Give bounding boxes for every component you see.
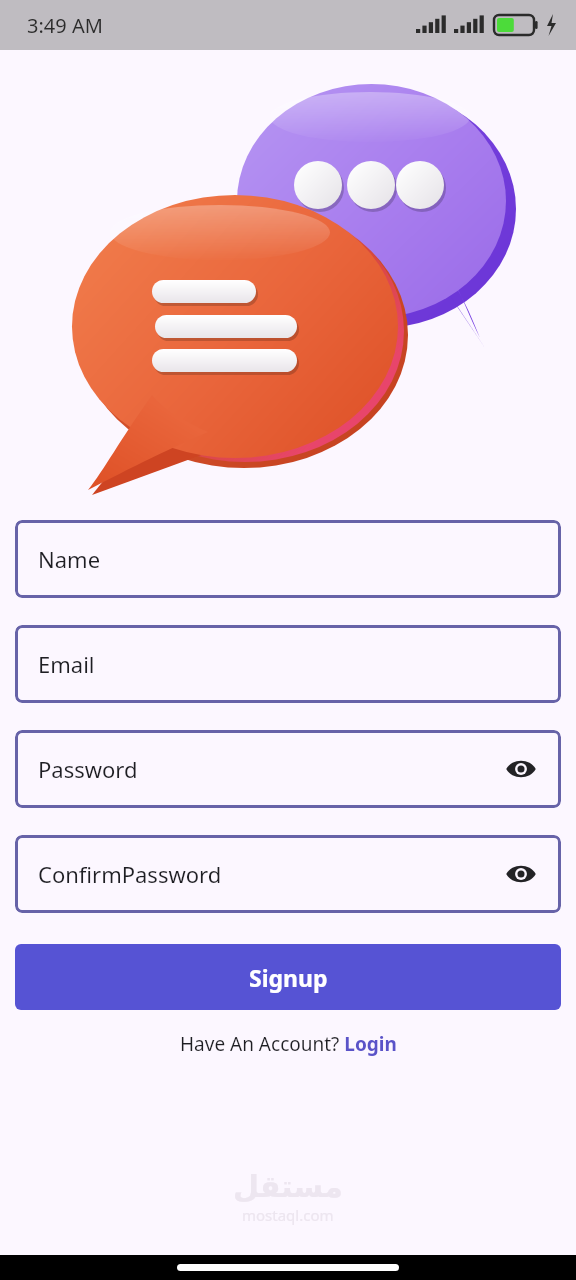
button[interactable]: ConfirmPassword [15,835,561,913]
staticText: Email [38,649,541,679]
button[interactable]: Password [15,730,561,808]
staticText: Name [38,544,541,574]
button[interactable]: Email [15,625,561,703]
staticText: 3:49 AM [27,12,103,39]
staticText: Signup [249,962,328,993]
staticText: Have An Account? Login [180,1031,397,1057]
button[interactable]: Show password [501,749,541,789]
staticText: ConfirmPassword [38,859,501,889]
staticText: مستقل [233,1169,343,1204]
button[interactable]: Signup [15,944,561,1010]
staticText: Password [38,754,501,784]
button[interactable]: Have An Account? Login [15,1031,561,1057]
staticText: mostaql.com [242,1205,334,1225]
button[interactable]: Show password [501,854,541,894]
button[interactable]: Name [15,520,561,598]
